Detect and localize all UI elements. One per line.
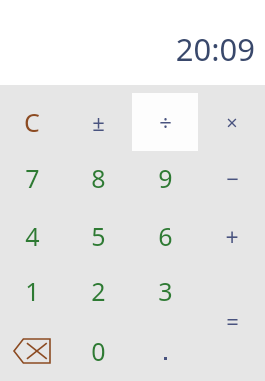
button[interactable]: Multiply <box>199 93 265 151</box>
staticText: 1 <box>25 274 40 308</box>
staticText: 7 <box>25 161 40 195</box>
staticText: 20:09 <box>175 28 255 70</box>
button[interactable]: Plus minus <box>65 93 131 151</box>
button[interactable]: 8 <box>65 149 131 207</box>
staticText: 3 <box>158 274 173 308</box>
staticText: 0 <box>91 334 106 368</box>
staticText: 2 <box>91 274 106 308</box>
staticText: = <box>226 306 239 336</box>
button[interactable]: 4 <box>0 207 65 265</box>
staticText: C <box>24 105 40 139</box>
staticText: × <box>226 109 238 136</box>
staticText: 6 <box>158 219 173 253</box>
button[interactable]: Equals <box>199 262 265 380</box>
button[interactable]: Minus <box>199 149 265 207</box>
staticText: 4 <box>25 219 40 253</box>
button[interactable]: Clear <box>0 93 65 151</box>
button[interactable]: 5 <box>65 207 131 265</box>
staticText: 8 <box>91 161 106 195</box>
button[interactable]: 2 <box>65 262 131 320</box>
staticText: 5 <box>91 219 106 253</box>
button[interactable]: 9 <box>132 149 198 207</box>
button[interactable]: 0 <box>65 322 131 380</box>
staticText: + <box>225 221 239 252</box>
button[interactable]: 7 <box>0 149 65 207</box>
button[interactable]: Divide <box>132 93 198 151</box>
staticText: 9 <box>158 161 173 195</box>
button[interactable]: Plus <box>199 207 265 265</box>
staticText: ÷ <box>159 107 172 137</box>
staticText: ± <box>92 107 105 137</box>
button[interactable]: Backspace <box>0 322 65 380</box>
button[interactable]: 1 <box>0 262 65 320</box>
button[interactable]: 6 <box>132 207 198 265</box>
button[interactable]: 3 <box>132 262 198 320</box>
button[interactable]: Decimal point <box>132 322 198 380</box>
staticText: − <box>226 163 239 193</box>
